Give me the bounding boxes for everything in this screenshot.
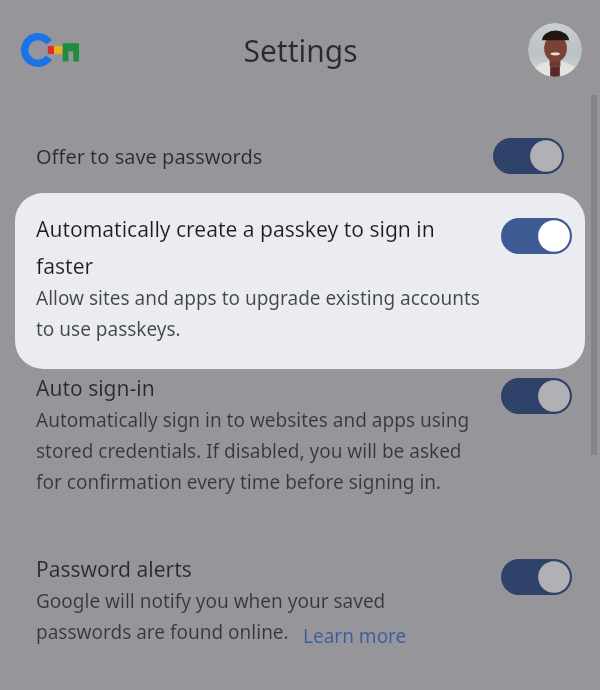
button[interactable]: Auto sign-in [0,372,600,495]
staticText: Offer to save passwords [36,143,493,170]
button[interactable]: Password alerts [0,555,600,645]
button[interactable]: Toggle [493,138,564,174]
button[interactable]: Toggle [501,218,572,254]
button[interactable]: Account [528,23,582,77]
button[interactable]: Toggle [501,559,572,595]
button[interactable]: Learn more [303,623,407,649]
staticText: Automatically sign in to websites and ap… [36,407,489,495]
button[interactable]: Offer to save passwords [0,122,600,190]
button[interactable]: Toggle [501,378,572,414]
button[interactable]: Automatically create a passkey to sign i… [15,193,585,369]
button[interactable]: Google Password Manager [18,18,82,82]
staticText: Automatically create a passkey to sign i… [36,215,491,280]
staticText: Password alerts [36,555,192,584]
staticText: Google will notify you when your saved p… [36,588,386,645]
staticText: Learn more [303,623,407,649]
staticText: Allow sites and apps to upgrade existing… [36,285,491,342]
staticText: Settings [243,30,358,71]
staticText: Auto sign-in [36,374,155,403]
